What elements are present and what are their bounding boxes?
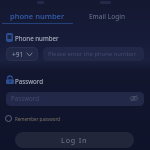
staticText: phone number <box>10 11 65 21</box>
button[interactable]: Please enter the phone number <box>43 47 144 61</box>
button[interactable]: +91 <box>6 47 38 61</box>
staticText: Password <box>15 77 43 85</box>
staticText: Log In <box>61 135 88 145</box>
staticText: Phone number <box>15 34 59 42</box>
button[interactable]: Remember password <box>5 114 61 123</box>
staticText: Email Login <box>89 12 125 21</box>
staticText: +91 <box>12 50 24 59</box>
button[interactable]: Log In <box>15 132 134 148</box>
staticText: Please enter the phone number <box>48 50 136 58</box>
button[interactable]: phone number <box>0 9 75 23</box>
staticText: Remember password <box>15 116 61 122</box>
button[interactable]: Email Login <box>75 9 138 23</box>
button[interactable]: Password <box>6 92 144 106</box>
staticText: Password <box>11 94 39 102</box>
